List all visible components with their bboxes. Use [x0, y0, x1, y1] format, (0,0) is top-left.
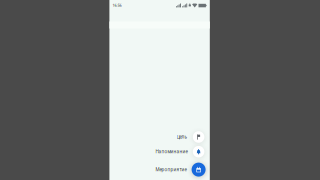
button[interactable]: Напоминание — [109, 145, 210, 158]
staticText: Напоминание — [156, 149, 188, 154]
staticText: Мероприятие — [155, 167, 186, 172]
button[interactable]: Цель — [109, 130, 210, 144]
staticText: 16:56 — [113, 3, 122, 8]
button[interactable]: Мероприятие — [109, 162, 210, 178]
staticText: Цель — [177, 134, 188, 140]
